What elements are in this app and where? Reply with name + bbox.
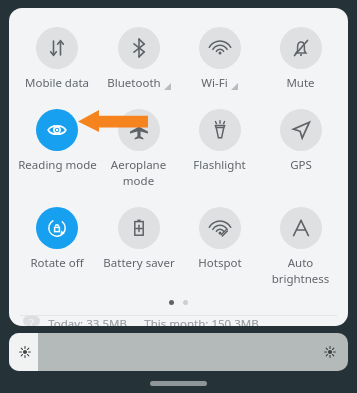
staticText: Wi-Fi xyxy=(201,75,228,91)
button[interactable]: Mobile data xyxy=(16,25,98,93)
button[interactable]: ? xyxy=(9,316,348,326)
staticText: Flashlight xyxy=(193,157,246,173)
staticText: Battery saver xyxy=(103,255,175,271)
button[interactable]: Flashlight xyxy=(179,107,260,175)
staticText: Bluetooth xyxy=(107,75,161,91)
staticText: Today: 33.5MB xyxy=(48,316,127,326)
staticText: Mute xyxy=(286,75,315,91)
staticText: This month: 150.3MB xyxy=(144,316,259,326)
staticText: Hotspot xyxy=(198,255,242,271)
staticText: Rotate off xyxy=(30,255,84,271)
button[interactable]: GPS xyxy=(260,107,341,175)
staticText: Auto brightness xyxy=(260,255,341,287)
button[interactable]: Aeroplane mode xyxy=(98,107,179,191)
staticText: Mobile data xyxy=(25,75,89,91)
button[interactable]: Battery saver xyxy=(98,205,179,273)
button[interactable]: Wi-Fi xyxy=(179,25,260,93)
staticText: ? xyxy=(29,316,34,326)
button[interactable]: Hotspot xyxy=(179,205,260,273)
button[interactable]: Reading mode xyxy=(16,107,98,175)
button[interactable]: Auto brightness xyxy=(260,205,341,289)
button[interactable]: Rotate off xyxy=(16,205,98,273)
button[interactable]: Mute xyxy=(260,25,341,93)
button[interactable]: Bluetooth xyxy=(98,25,179,93)
staticText: Aeroplane mode xyxy=(98,157,179,189)
staticText: Reading mode xyxy=(18,157,97,173)
button[interactable]: Brightness xyxy=(9,333,348,371)
staticText: GPS xyxy=(290,157,312,173)
